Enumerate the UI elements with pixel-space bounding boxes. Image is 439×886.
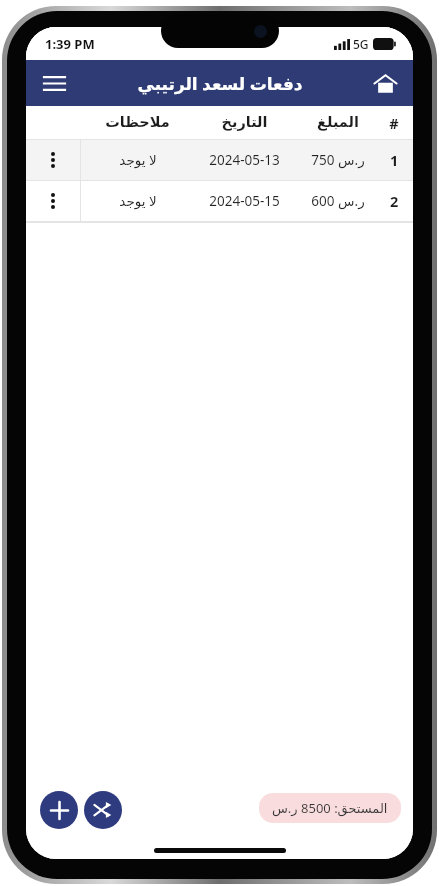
button[interactable]: More options bbox=[26, 181, 413, 221]
button[interactable]: Add payment bbox=[40, 791, 78, 829]
staticText: 2024-05-15 bbox=[209, 192, 280, 210]
staticText: 2024-05-13 bbox=[209, 151, 280, 169]
staticText: 750 ر.س bbox=[311, 151, 365, 169]
staticText: 1:39 PM bbox=[45, 35, 95, 53]
staticText: التاريخ bbox=[221, 114, 268, 131]
button[interactable]: Home bbox=[365, 63, 405, 103]
staticText: دفعات لسعد الرتيبي bbox=[137, 72, 303, 95]
staticText: 1 bbox=[390, 150, 399, 170]
button[interactable]: Shuffle bbox=[84, 791, 122, 829]
staticText: 5G bbox=[353, 36, 369, 52]
staticText: # bbox=[389, 113, 399, 133]
button[interactable]: More options bbox=[26, 140, 80, 180]
staticText: لا يوجد bbox=[119, 192, 157, 210]
staticText: 600 ر.س bbox=[311, 192, 365, 210]
staticText: ملاحظات bbox=[105, 114, 170, 131]
staticText: 2 bbox=[390, 191, 399, 211]
button[interactable]: المستحق: 8500 ر.س bbox=[259, 793, 401, 823]
staticText: المبلغ bbox=[317, 114, 359, 131]
staticText: لا يوجد bbox=[119, 151, 157, 169]
button[interactable]: More options bbox=[26, 181, 80, 221]
button[interactable]: Open navigation menu bbox=[34, 63, 74, 103]
staticText: المستحق: 8500 ر.س bbox=[272, 799, 388, 817]
button[interactable]: More options bbox=[26, 140, 413, 180]
